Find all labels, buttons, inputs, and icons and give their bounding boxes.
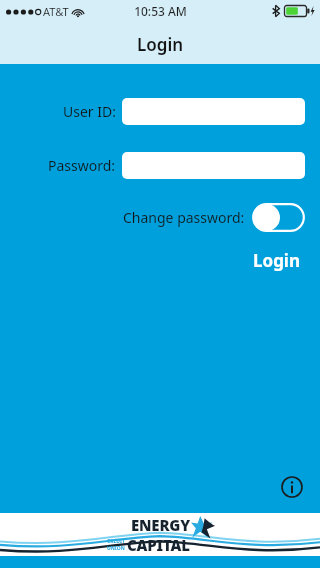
- button[interactable]: Change password toggle: [252, 203, 305, 232]
- staticText: CAPITAL: [127, 535, 190, 555]
- button[interactable]: Text input: [122, 98, 305, 125]
- staticText: Login: [137, 33, 184, 56]
- staticText: Change password:: [123, 208, 245, 227]
- button[interactable]: Text input: [122, 152, 305, 179]
- button[interactable]: Login: [249, 247, 305, 274]
- staticText: ENERGY: [131, 515, 190, 535]
- staticText: CREDIT: [107, 538, 125, 545]
- staticText: UNION: [107, 545, 125, 552]
- staticText: 10:53 AM: [134, 3, 187, 19]
- staticText: AT&T: [43, 4, 69, 19]
- staticText: Password:: [48, 156, 116, 175]
- button[interactable]: Information: [278, 473, 306, 501]
- staticText: Login: [253, 249, 301, 272]
- staticText: User ID:: [63, 102, 116, 121]
